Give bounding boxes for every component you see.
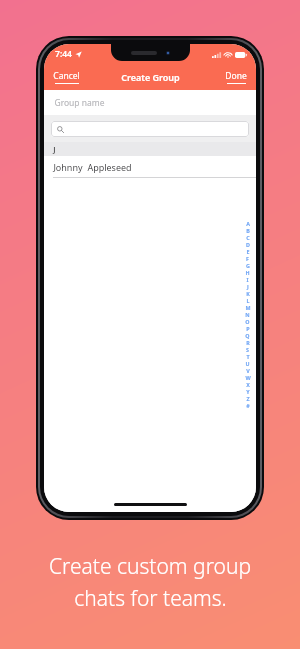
staticText: Appleseed	[87, 161, 132, 173]
button[interactable]: Alphabet index	[243, 220, 252, 409]
staticText: D	[246, 241, 250, 248]
staticText: O	[245, 318, 250, 325]
staticText: J	[53, 144, 56, 154]
button[interactable]: Done	[216, 64, 256, 90]
staticText: I	[246, 276, 249, 283]
staticText: W	[245, 374, 251, 381]
staticText: H	[245, 269, 250, 276]
button[interactable]: Johnny	[44, 156, 256, 178]
staticText: L	[246, 297, 250, 304]
staticText: F	[246, 255, 249, 262]
staticText: Z	[246, 395, 250, 402]
staticText: Johnny	[53, 161, 83, 173]
staticText: #	[246, 402, 250, 409]
staticText: chats for teams.	[74, 584, 227, 613]
button[interactable]: Group name	[44, 90, 256, 115]
button[interactable]	[51, 121, 249, 137]
staticText: N	[245, 311, 250, 318]
staticText: C	[246, 234, 250, 241]
staticText: B	[246, 227, 250, 234]
staticText: Create Group	[121, 71, 180, 83]
staticText: E	[246, 248, 250, 255]
button[interactable]: Cancel	[44, 64, 89, 90]
staticText: 7:44	[55, 48, 72, 60]
staticText: T	[246, 353, 250, 360]
staticText: P	[246, 325, 250, 332]
staticText: R	[246, 339, 250, 346]
staticText: Create custom group	[49, 552, 251, 581]
staticText: Cancel	[53, 70, 80, 82]
staticText: Q	[245, 332, 250, 339]
staticText: M	[245, 304, 251, 311]
staticText: S	[246, 346, 249, 353]
staticText: V	[246, 367, 250, 374]
staticText: K	[246, 290, 250, 297]
staticText: U	[245, 360, 250, 367]
staticText: A	[246, 220, 250, 227]
staticText: J	[247, 283, 249, 290]
staticText: X	[246, 381, 250, 388]
staticText: Done	[225, 70, 247, 82]
staticText: G	[246, 262, 250, 269]
staticText: Group name	[54, 97, 105, 109]
staticText: Y	[246, 388, 250, 395]
